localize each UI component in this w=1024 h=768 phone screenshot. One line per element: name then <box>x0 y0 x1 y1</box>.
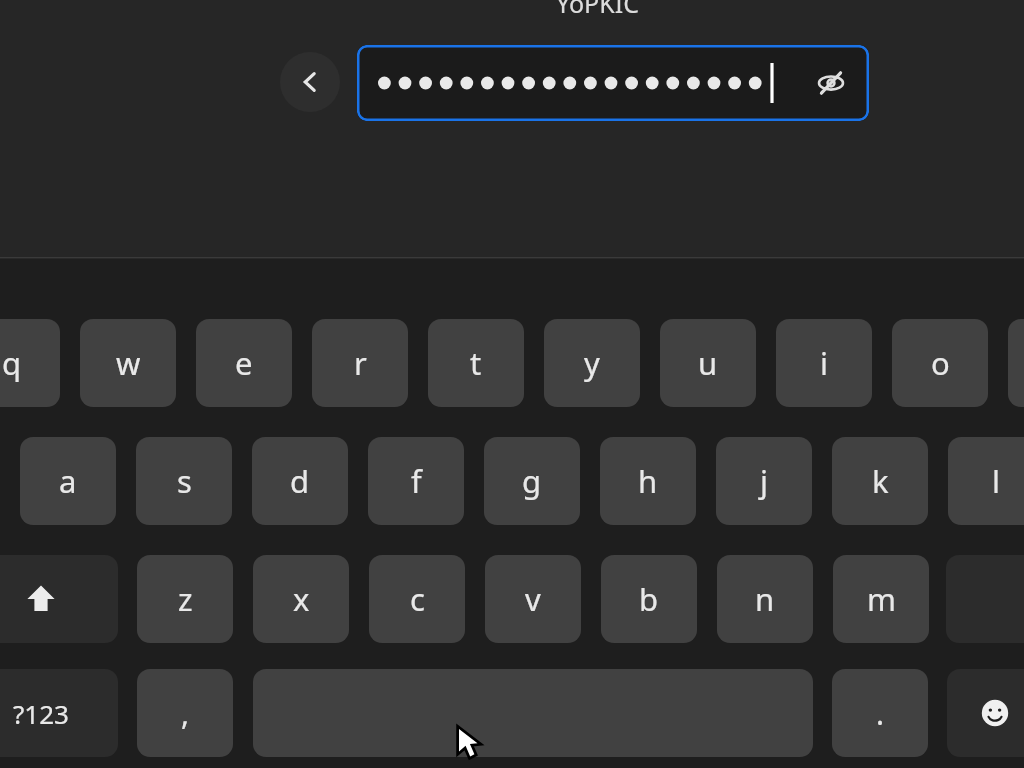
staticText: e <box>235 342 253 384</box>
button[interactable]: k <box>832 437 928 525</box>
staticText: YoPKIC <box>556 0 639 20</box>
button[interactable]: z <box>137 555 233 643</box>
button[interactable]: f <box>368 437 464 525</box>
staticText: q <box>2 342 22 384</box>
button[interactable]: Space <box>253 669 813 757</box>
button[interactable]: Back <box>280 52 340 112</box>
button[interactable]: Hide password <box>805 57 857 109</box>
button[interactable]: h <box>600 437 696 525</box>
staticText: y <box>584 342 600 384</box>
staticText: n <box>755 578 775 620</box>
staticText: v <box>525 578 541 620</box>
button[interactable]: w <box>80 319 176 407</box>
staticText: u <box>698 342 718 384</box>
staticText: a <box>59 460 77 502</box>
staticText: m <box>867 578 896 620</box>
staticText: r <box>354 342 367 384</box>
button[interactable]: p <box>1008 319 1024 407</box>
staticText: o <box>931 342 950 384</box>
button[interactable]: i <box>776 319 872 407</box>
button[interactable]: n <box>717 555 813 643</box>
button[interactable]: ?123 <box>0 669 118 757</box>
button[interactable]: t <box>428 319 524 407</box>
button[interactable]: a <box>20 437 116 525</box>
button[interactable]: r <box>312 319 408 407</box>
staticText: z <box>178 578 193 620</box>
staticText: t <box>470 342 482 384</box>
staticText: f <box>411 460 422 502</box>
button[interactable]: . <box>832 669 928 757</box>
staticText: s <box>177 460 192 502</box>
button[interactable]: Shift <box>0 555 118 643</box>
button[interactable]: v <box>485 555 581 643</box>
staticText: i <box>820 342 828 384</box>
button[interactable]: s <box>136 437 232 525</box>
staticText: k <box>872 460 889 502</box>
button[interactable]: x <box>253 555 349 643</box>
button[interactable]: m <box>833 555 929 643</box>
staticText: g <box>522 460 542 502</box>
button[interactable]: e <box>196 319 292 407</box>
button[interactable]: j <box>716 437 812 525</box>
staticText: w <box>116 342 141 384</box>
button[interactable]: Emoji <box>947 669 1024 757</box>
staticText: ?123 <box>13 696 69 731</box>
button[interactable]: d <box>252 437 348 525</box>
staticText: d <box>290 460 310 502</box>
staticText: b <box>639 578 659 620</box>
staticText: x <box>293 578 310 620</box>
button[interactable]: c <box>369 555 465 643</box>
button[interactable]: o <box>892 319 988 407</box>
button[interactable]: u <box>660 319 756 407</box>
staticText: . <box>876 693 885 734</box>
button[interactable]: y <box>544 319 640 407</box>
staticText: h <box>638 460 658 502</box>
button[interactable]: g <box>484 437 580 525</box>
staticText: l <box>992 460 1000 502</box>
staticText: j <box>760 460 768 502</box>
button[interactable]: b <box>601 555 697 643</box>
staticText: , <box>181 693 190 734</box>
button[interactable]: Hide password <box>357 45 869 121</box>
staticText: c <box>410 578 425 620</box>
button[interactable]: l <box>948 437 1024 525</box>
button[interactable]: q <box>0 319 60 407</box>
button[interactable]: , <box>137 669 233 757</box>
